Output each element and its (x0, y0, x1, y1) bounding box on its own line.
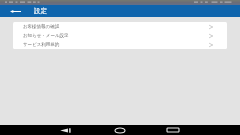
staticText: お客様情報の確認 (23, 24, 60, 30)
button[interactable]: Back (54, 125, 76, 135)
button[interactable]: サービス利用規約 (13, 40, 227, 49)
staticText: お知らせ・メール設定 (23, 33, 69, 39)
staticText: 設定 (34, 7, 47, 15)
button[interactable]: Recent apps (162, 125, 184, 135)
button[interactable]: お客様情報の確認 (13, 22, 227, 31)
button[interactable]: Home (109, 125, 131, 135)
staticText: サービス利用規約 (23, 42, 60, 48)
button[interactable]: Back (0, 5, 31, 17)
button[interactable]: お知らせ・メール設定 (13, 31, 227, 40)
